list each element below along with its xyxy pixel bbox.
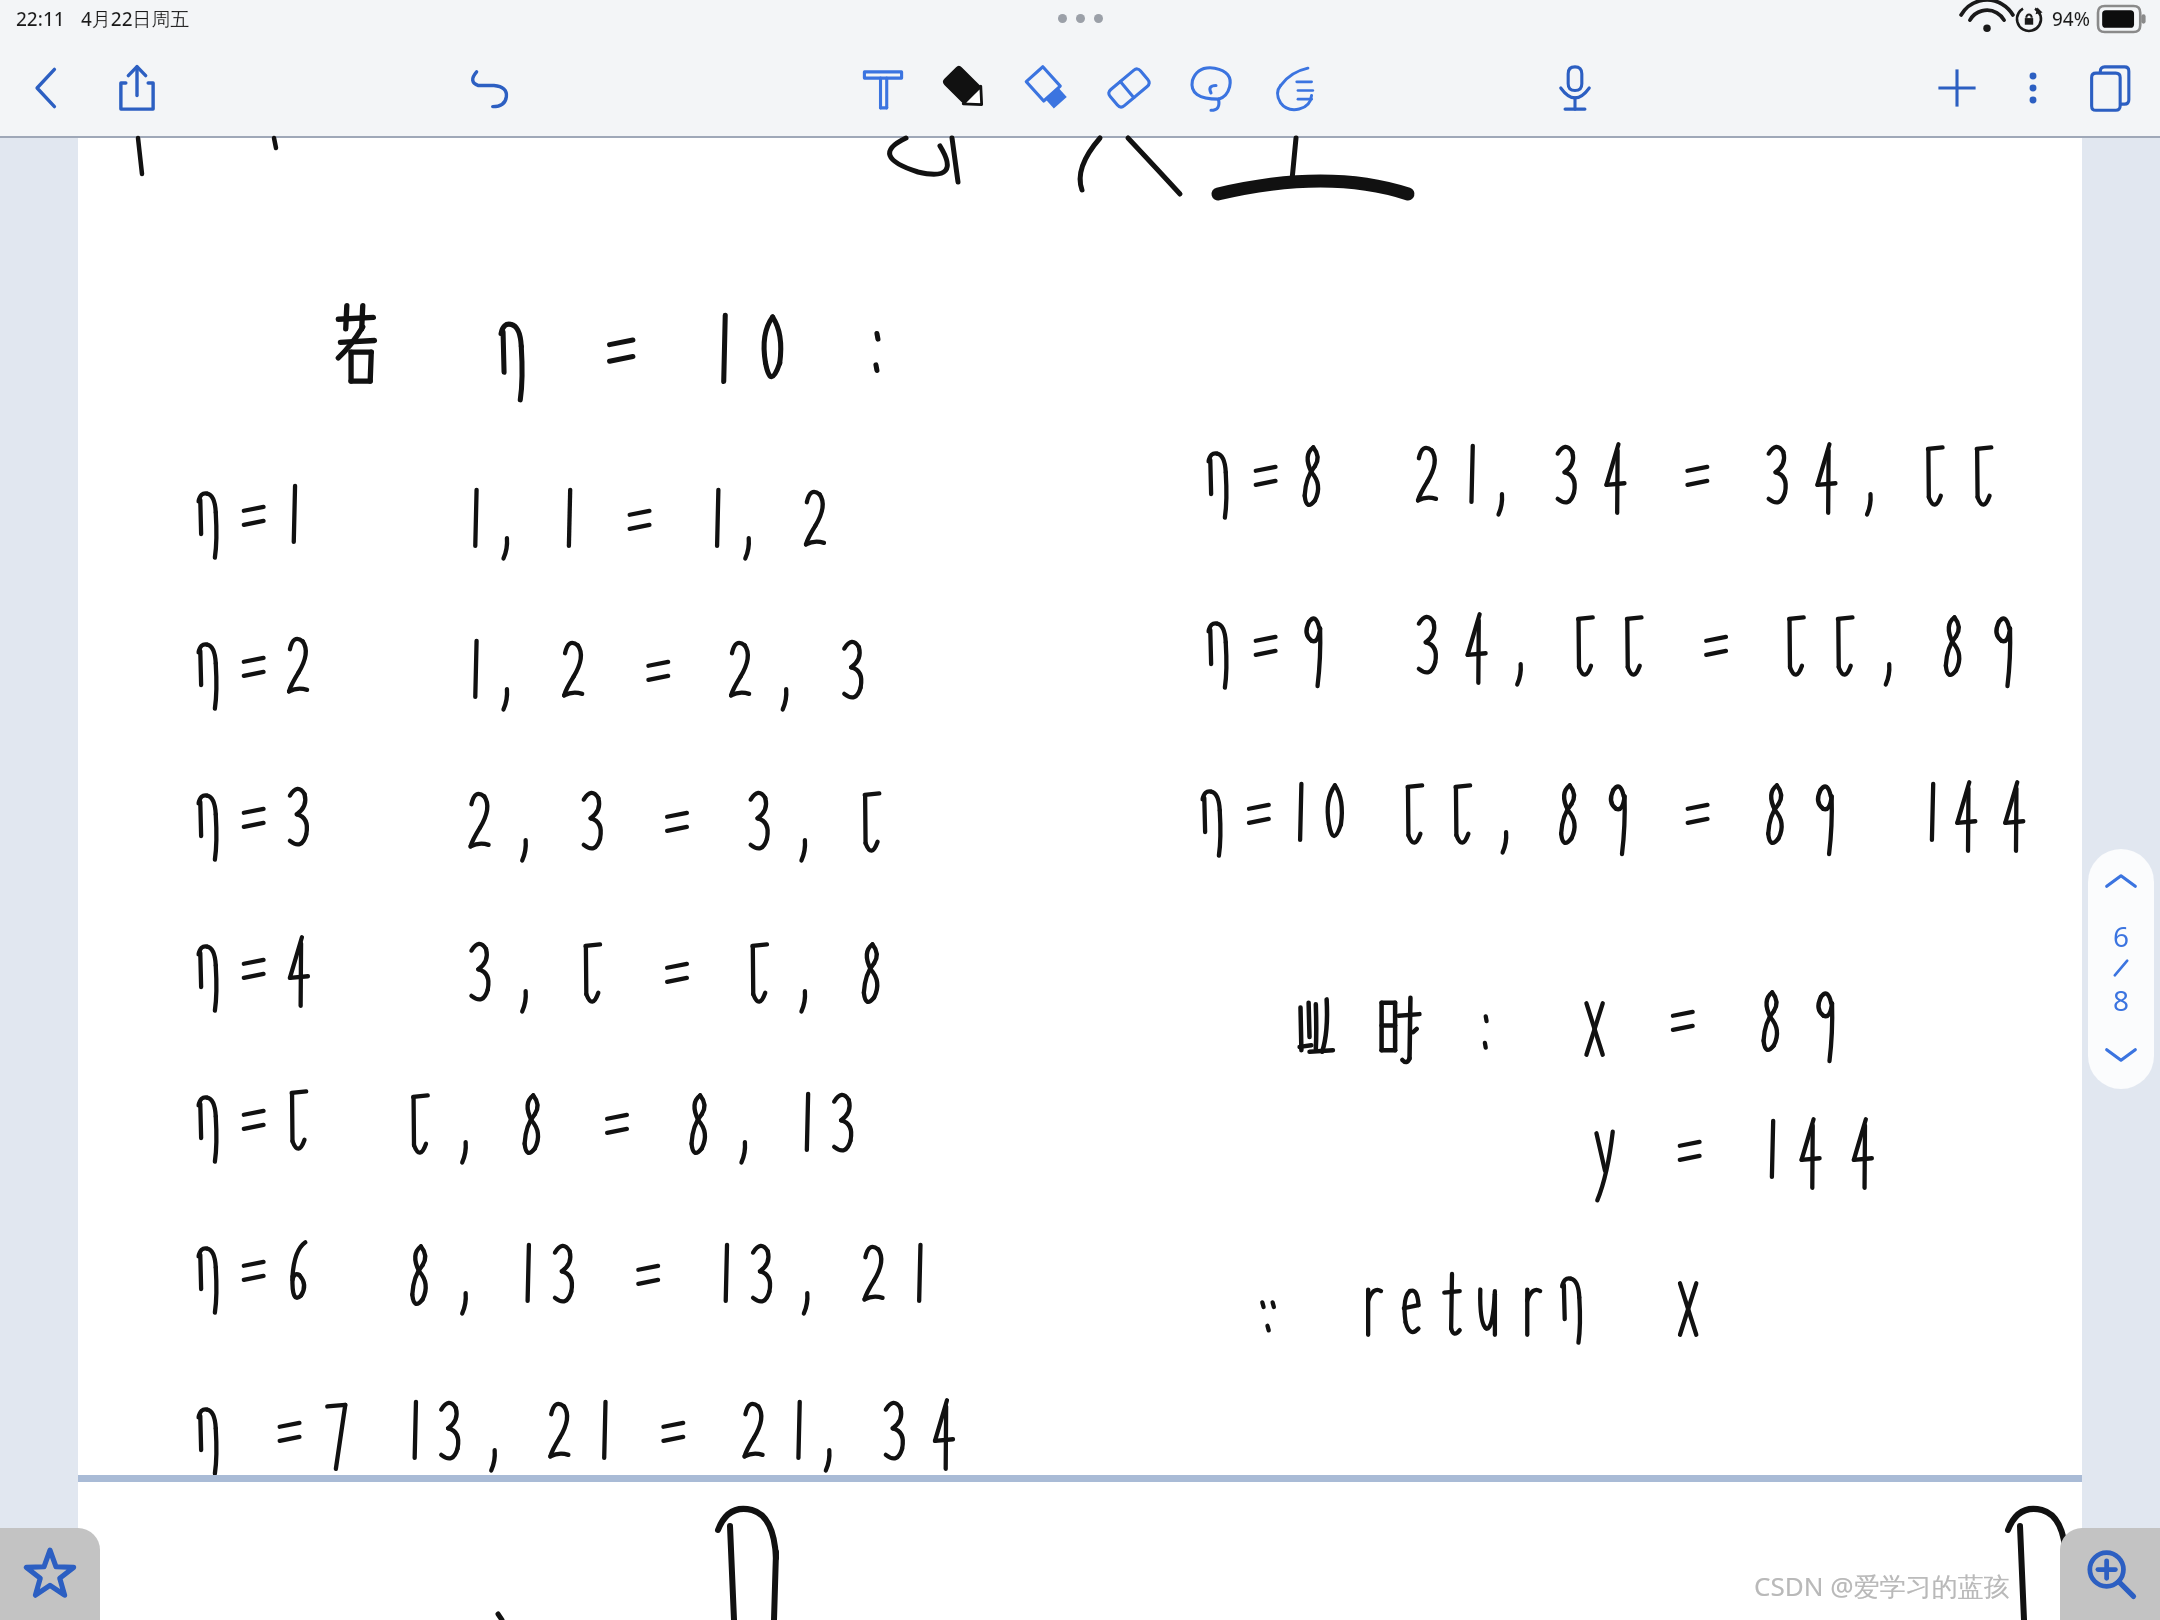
staticText: 8 [2113,981,2130,1019]
button[interactable]: Zoom in [2060,1528,2160,1620]
staticText: 22:11 [16,6,65,32]
staticText: 94% [2052,6,2090,32]
button[interactable]: Back [16,57,78,119]
button[interactable]: Pen tool, selected [934,57,996,119]
button[interactable]: Add [1926,57,1988,119]
button[interactable]: Eraser [1098,57,1160,119]
staticText: 4月22日周五 [81,6,190,32]
button[interactable]: Pan / select [1262,57,1324,119]
button[interactable]: Share [106,57,168,119]
button[interactable]: Lasso select [1180,57,1242,119]
button[interactable]: Text tool [852,57,914,119]
button[interactable]: Highlighter [1016,57,1078,119]
button[interactable]: Undo [458,57,520,119]
staticText: 6 [2113,917,2130,955]
button[interactable]: Page 6 of 8 [2088,849,2154,1089]
staticText: CSDN @爱学习的蓝孩 [1754,1568,2010,1604]
button[interactable]: Favorite [0,1528,100,1620]
button[interactable]: Record audio [1544,57,1606,119]
button[interactable]: More options [2010,65,2056,111]
button[interactable]: Pages [2078,57,2140,119]
